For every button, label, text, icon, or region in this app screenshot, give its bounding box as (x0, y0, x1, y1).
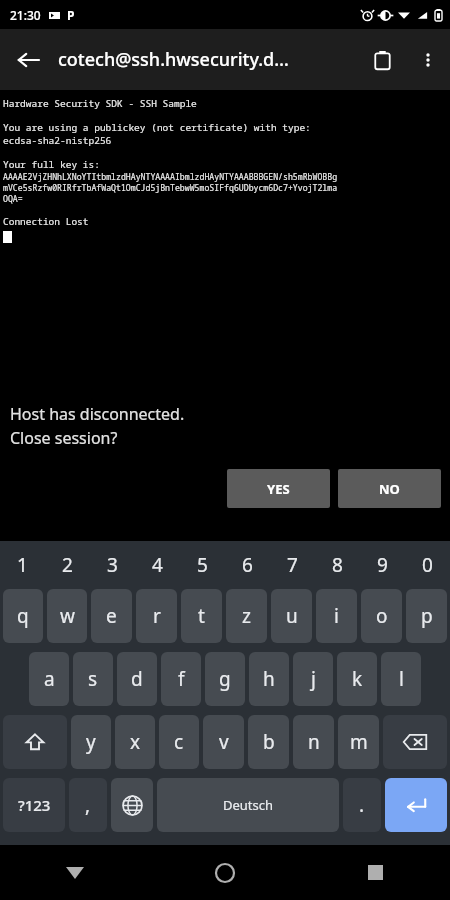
staticText: Hardware Security SDK - SSH Sample (3, 97, 197, 110)
staticText: 21:30 (10, 7, 41, 23)
button[interactable]: Home (150, 845, 300, 900)
button[interactable]: b (248, 715, 289, 769)
button[interactable]: NO (338, 469, 441, 508)
button[interactable]: Recent apps (300, 845, 450, 900)
staticText: 8 (332, 552, 343, 578)
staticText: j (311, 666, 316, 692)
button[interactable]: 2 (45, 541, 90, 589)
button[interactable]: Enter (385, 778, 447, 832)
button[interactable]: 9 (360, 541, 405, 589)
button[interactable]: Back (0, 845, 150, 900)
button[interactable]: e (91, 589, 132, 643)
button[interactable]: m (338, 715, 379, 769)
button[interactable]: 3 (90, 541, 135, 589)
staticText: p (421, 603, 433, 629)
button[interactable]: i (316, 589, 357, 643)
button[interactable]: 7 (270, 541, 315, 589)
button[interactable]: 6 (225, 541, 270, 589)
staticText: t (198, 603, 205, 629)
button[interactable]: g (205, 652, 245, 706)
button[interactable]: , (69, 778, 107, 832)
button[interactable]: Backspace (383, 715, 447, 769)
staticText: s (88, 666, 98, 692)
staticText: ?123 (18, 795, 51, 815)
button[interactable]: u (271, 589, 312, 643)
staticText: k (352, 666, 363, 692)
staticText: u (286, 603, 298, 629)
staticText: h (263, 666, 275, 692)
staticText: i (334, 603, 339, 629)
button[interactable]: r (136, 589, 177, 643)
button[interactable]: Change keyboard language (111, 778, 153, 832)
button[interactable]: a (29, 652, 69, 706)
button[interactable]: y (71, 715, 111, 769)
button[interactable]: w (47, 589, 87, 643)
staticText: Close session? (10, 427, 118, 449)
staticText: Deutsch (223, 796, 274, 814)
button[interactable]: h (249, 652, 289, 706)
button[interactable]: f (161, 652, 201, 706)
staticText: c (174, 729, 184, 755)
staticText: m (350, 729, 368, 755)
staticText: NO (379, 480, 400, 498)
staticText: , (85, 792, 91, 818)
button[interactable]: x (115, 715, 155, 769)
button[interactable]: d (117, 652, 157, 706)
button[interactable]: p (406, 589, 447, 643)
button[interactable]: q (3, 589, 43, 643)
staticText: OQA= (3, 193, 23, 204)
staticText: mVCe5sRzfw0RIRfrTbAfWaQt1OmCJd5jBnTebwW5… (3, 182, 338, 193)
button[interactable]: 8 (315, 541, 360, 589)
staticText: e (106, 603, 117, 629)
staticText: 2 (62, 552, 73, 578)
staticText: r (153, 603, 161, 629)
staticText: q (17, 603, 29, 629)
button[interactable]: 4 (135, 541, 180, 589)
button[interactable]: t (181, 589, 222, 643)
staticText: n (308, 729, 320, 755)
button[interactable]: 1 (0, 541, 45, 589)
staticText: 1 (17, 552, 28, 578)
staticText: AAAAE2VjZHNhLXNoYTItbmlzdHAyNTYAAAAIbmlz… (3, 171, 338, 182)
staticText: o (376, 603, 388, 629)
button[interactable]: z (226, 589, 267, 643)
staticText: y (86, 729, 96, 755)
staticText: cotech@ssh.hwsecurity.d… (58, 47, 358, 72)
staticText: 6 (242, 552, 253, 578)
staticText: x (130, 729, 141, 755)
button[interactable]: c (159, 715, 199, 769)
staticText: v (219, 729, 229, 755)
button[interactable]: 5 (180, 541, 225, 589)
staticText: 4 (152, 552, 163, 578)
staticText: 9 (377, 552, 388, 578)
button[interactable]: More options (406, 38, 450, 82)
staticText: b (263, 729, 275, 755)
button[interactable]: . (343, 778, 381, 832)
button[interactable]: l (381, 652, 421, 706)
staticText: 5 (197, 552, 208, 578)
staticText: l (399, 666, 404, 692)
staticText: f (178, 666, 185, 692)
button[interactable]: YES (227, 469, 330, 508)
staticText: z (242, 603, 251, 629)
staticText: Connection Lost (3, 215, 89, 228)
button[interactable]: s (73, 652, 113, 706)
button[interactable]: Back (0, 32, 56, 88)
button[interactable]: j (293, 652, 333, 706)
button[interactable]: Deutsch (157, 778, 339, 832)
staticText: 3 (107, 552, 118, 578)
staticText: a (44, 666, 55, 692)
staticText: ecdsa-sha2-nistp256 (3, 134, 112, 147)
staticText: 0 (422, 552, 433, 578)
staticText: P (67, 7, 75, 23)
button[interactable]: k (337, 652, 377, 706)
button[interactable]: Paste (358, 36, 406, 84)
button[interactable]: v (203, 715, 244, 769)
staticText: You are using a publickey (not certifica… (3, 121, 311, 134)
staticText: . (359, 792, 365, 818)
button[interactable]: Shift (3, 715, 67, 769)
button[interactable]: ?123 (3, 778, 65, 832)
button[interactable]: o (361, 589, 402, 643)
button[interactable]: 0 (405, 541, 450, 589)
button[interactable]: n (293, 715, 334, 769)
